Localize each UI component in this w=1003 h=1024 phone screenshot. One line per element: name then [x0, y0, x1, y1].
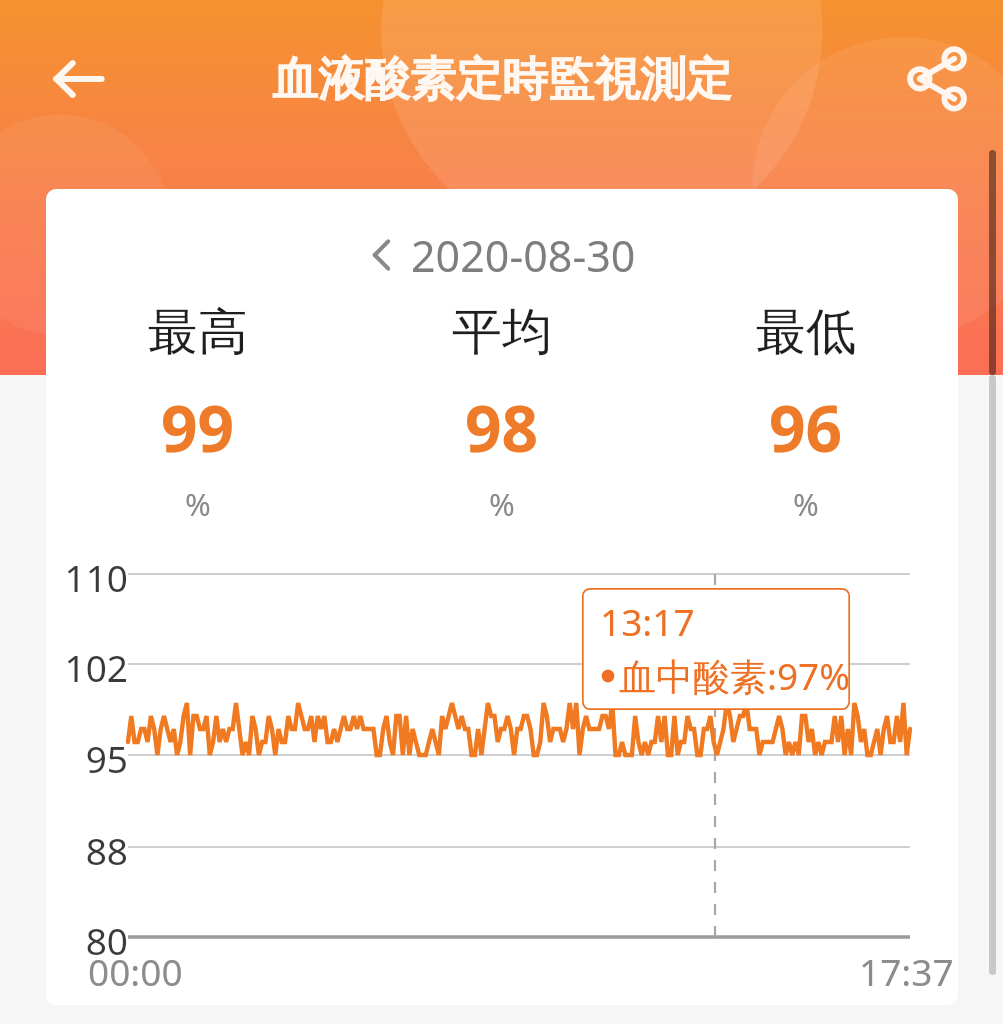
- staticText: 13:17: [600, 596, 695, 646]
- button[interactable]: 2020-08-30: [46, 225, 958, 285]
- staticText: 血液酸素定時監視測定: [272, 51, 732, 109]
- staticText: 96: [769, 384, 843, 471]
- staticText: 00:00: [88, 946, 183, 994]
- staticText: 17:37: [859, 946, 954, 994]
- staticText: 最高: [148, 301, 248, 364]
- staticText: 80: [85, 915, 128, 959]
- button[interactable]: Share: [898, 38, 976, 118]
- staticText: 98: [465, 384, 539, 471]
- staticText: %: [793, 483, 819, 525]
- staticText: %: [185, 483, 211, 525]
- staticText: 平均: [452, 301, 552, 364]
- staticText: 最低: [756, 301, 856, 364]
- staticText: 102: [64, 642, 128, 686]
- button[interactable]: Back: [40, 40, 118, 118]
- staticText: 99: [161, 384, 235, 471]
- button[interactable]: 平均: [350, 301, 654, 525]
- staticText: 95: [85, 733, 128, 777]
- staticText: 2020-08-30: [411, 226, 636, 285]
- button[interactable]: 最高: [46, 301, 350, 525]
- button[interactable]: 最低: [654, 301, 958, 525]
- staticText: %: [489, 483, 515, 525]
- staticText: 血中酸素:97%: [619, 650, 850, 701]
- staticText: 88: [85, 825, 128, 869]
- staticText: 110: [64, 552, 128, 596]
- button[interactable]: 13:17: [582, 588, 850, 710]
